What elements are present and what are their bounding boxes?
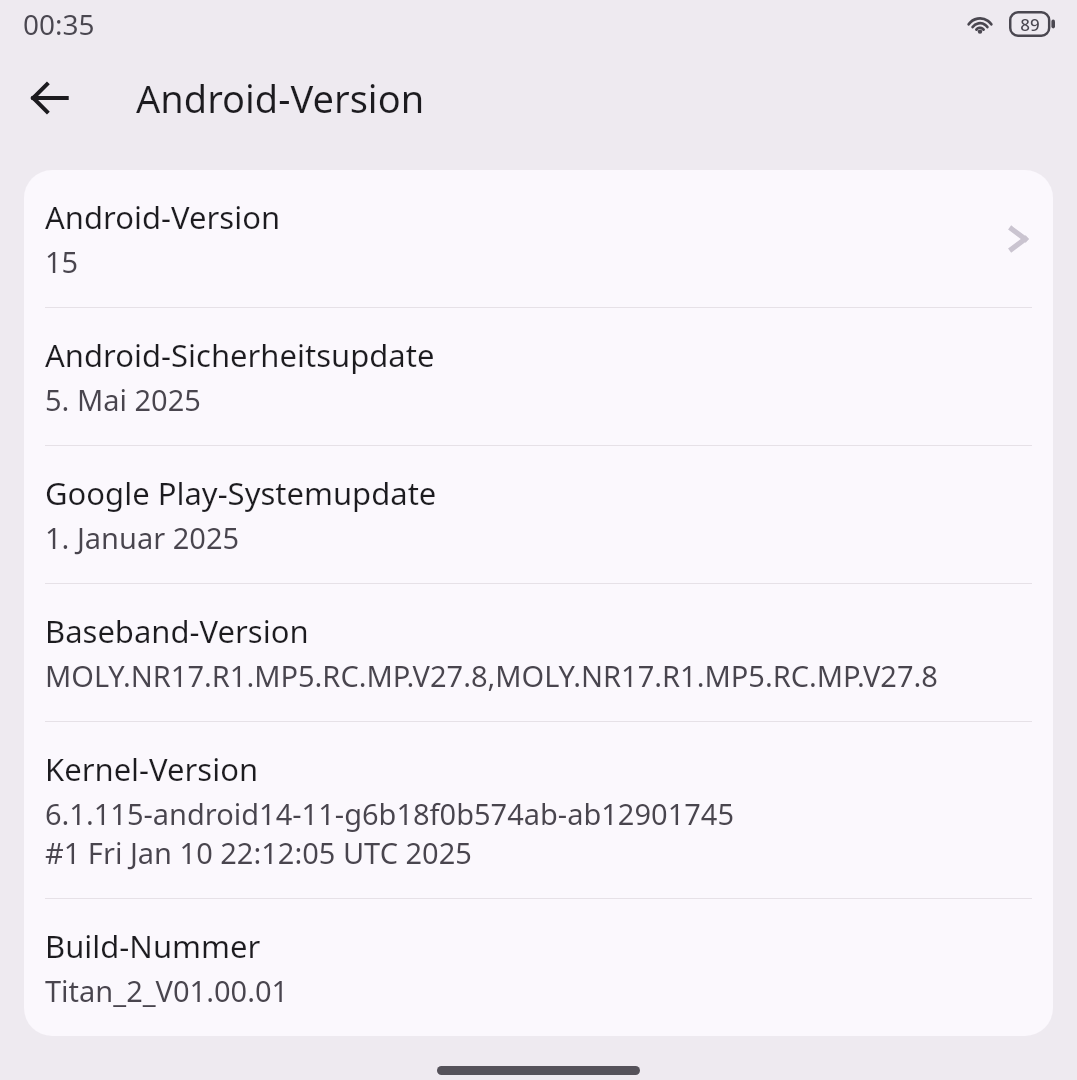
- staticText: Build-Nummer: [45, 925, 261, 967]
- staticText: 15: [45, 242, 79, 281]
- staticText: #1 Fri Jan 10 22:12:05 UTC 2025: [45, 833, 472, 872]
- button[interactable]: Kernel-Version: [24, 722, 1053, 898]
- button[interactable]: Build-Nummer: [24, 899, 1053, 1036]
- staticText: 6.1.115-android14-11-g6b18f0b574ab-ab129…: [45, 794, 734, 833]
- staticText: Baseband-Version: [45, 610, 309, 652]
- staticText: Android-Version: [45, 196, 281, 238]
- staticText: 89: [1020, 13, 1040, 36]
- staticText: 00:35: [23, 5, 95, 43]
- button[interactable]: Android-Sicherheitsupdate: [24, 308, 1053, 445]
- staticText: MOLY.NR17.R1.MP5.RC.MP.V27.8,MOLY.NR17.R…: [45, 656, 938, 695]
- staticText: Google Play-Systemupdate: [45, 472, 437, 514]
- staticText: Android-Sicherheitsupdate: [45, 334, 435, 376]
- staticText: 5. Mai 2025: [45, 380, 201, 419]
- staticText: Kernel-Version: [45, 748, 259, 790]
- staticText: 1. Januar 2025: [45, 518, 240, 557]
- button[interactable]: Android-Version: [24, 170, 1053, 307]
- staticText: Android-Version: [136, 72, 425, 124]
- staticText: Titan_2_V01.00.01: [45, 971, 289, 1010]
- button[interactable]: Zurück: [14, 62, 86, 134]
- button[interactable]: Google Play-Systemupdate: [24, 446, 1053, 583]
- button[interactable]: Baseband-Version: [24, 584, 1053, 721]
